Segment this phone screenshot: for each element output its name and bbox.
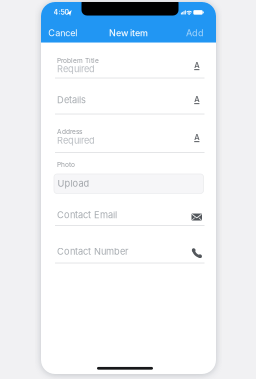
staticText: Details [57, 94, 86, 105]
staticText: A [194, 95, 199, 104]
staticText: Photo [57, 160, 75, 168]
staticText: A [194, 61, 199, 70]
staticText: New item [109, 28, 148, 38]
staticText: Upload [57, 178, 89, 189]
staticText: Required [57, 135, 95, 146]
staticText: Contact Email [57, 209, 117, 220]
staticText: 4:50 [53, 8, 69, 16]
staticText: Required [57, 63, 95, 74]
staticText: Contact Number [57, 246, 128, 257]
staticText: Cancel [48, 27, 77, 38]
staticText: Address [57, 128, 82, 136]
staticText: Add [186, 27, 204, 38]
staticText: Problem Title [57, 57, 99, 65]
staticText: A [194, 133, 199, 142]
